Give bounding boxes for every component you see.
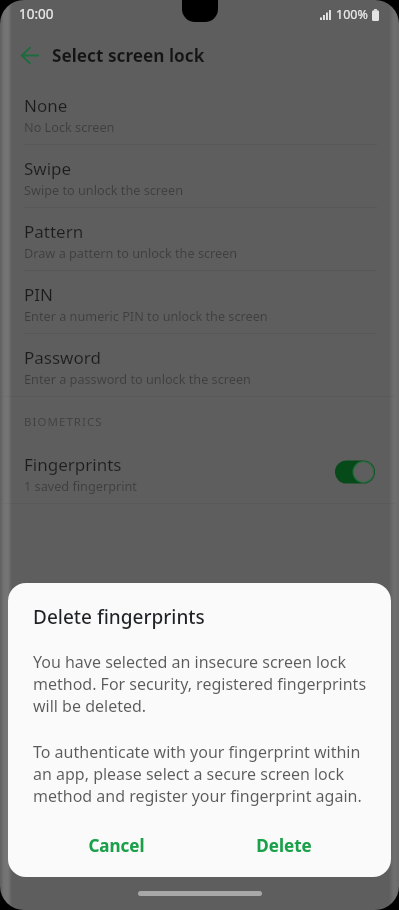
staticText: PIN bbox=[24, 283, 53, 306]
staticText: Cancel bbox=[88, 834, 145, 857]
button[interactable]: Delete bbox=[240, 826, 328, 865]
staticText: Swipe to unlock the screen bbox=[24, 181, 183, 198]
staticText: To authenticate with your fingerprint wi… bbox=[33, 741, 367, 807]
staticText: Password bbox=[24, 346, 101, 369]
staticText: 1 saved fingerprint bbox=[24, 477, 137, 494]
staticText: Swipe bbox=[24, 157, 72, 180]
button[interactable]: None bbox=[3, 82, 396, 144]
staticText: 100% bbox=[336, 6, 368, 23]
staticText: Select screen lock bbox=[52, 44, 205, 67]
button[interactable]: Cancel bbox=[72, 826, 161, 865]
button[interactable]: Pattern bbox=[3, 208, 396, 270]
staticText: No Lock screen bbox=[24, 118, 115, 135]
staticText: Fingerprints bbox=[24, 453, 122, 476]
staticText: BIOMETRICS bbox=[24, 414, 103, 430]
button[interactable]: Back bbox=[12, 37, 48, 73]
staticText: Draw a pattern to unlock the screen bbox=[24, 244, 238, 261]
button[interactable]: PIN bbox=[3, 271, 396, 333]
staticText: Enter a numeric PIN to unlock the screen bbox=[24, 307, 268, 324]
staticText: 10:00 bbox=[19, 5, 54, 23]
button[interactable]: Fingerprints toggle bbox=[335, 461, 377, 487]
button[interactable]: Password bbox=[3, 334, 396, 396]
staticText: Delete bbox=[256, 834, 312, 857]
button[interactable]: Swipe bbox=[3, 145, 396, 207]
staticText: Enter a password to unlock the screen bbox=[24, 370, 251, 387]
staticText: Pattern bbox=[24, 220, 84, 243]
staticText: Delete fingerprints bbox=[33, 604, 205, 630]
staticText: None bbox=[24, 94, 68, 117]
staticText: You have selected an insecure screen loc… bbox=[33, 651, 367, 717]
button[interactable]: Fingerprints bbox=[3, 441, 396, 503]
